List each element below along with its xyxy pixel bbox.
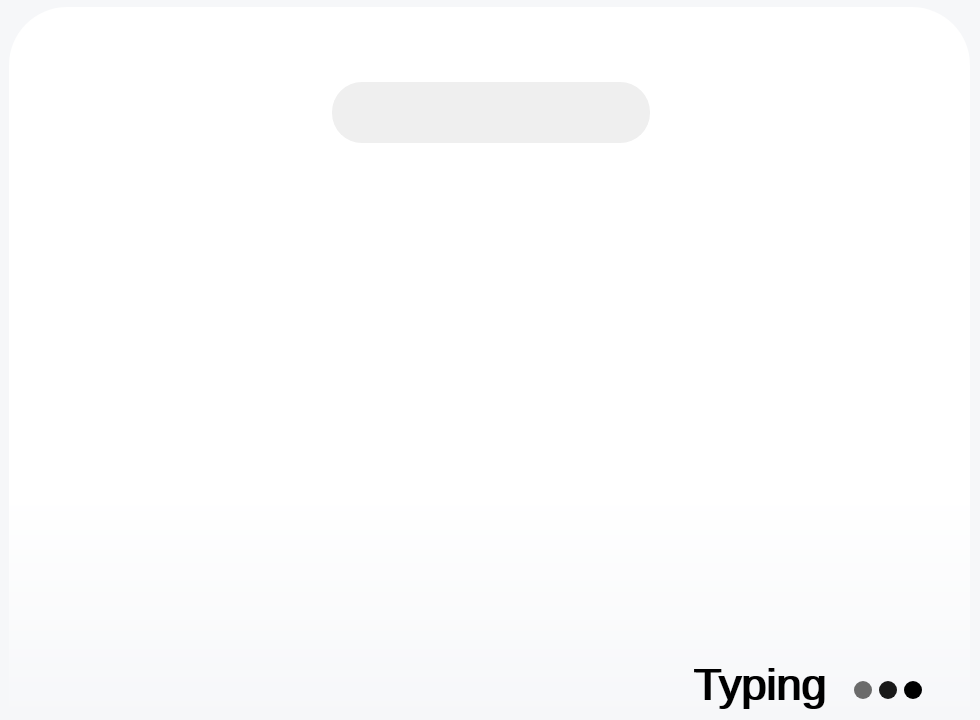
staticText: Typing: [695, 659, 828, 709]
button[interactable]: Typing: [693, 659, 826, 709]
staticText: Typing: [693, 659, 826, 709]
button[interactable]: Loading message: [332, 82, 650, 143]
button[interactable]: Typing indicator: [854, 681, 922, 699]
